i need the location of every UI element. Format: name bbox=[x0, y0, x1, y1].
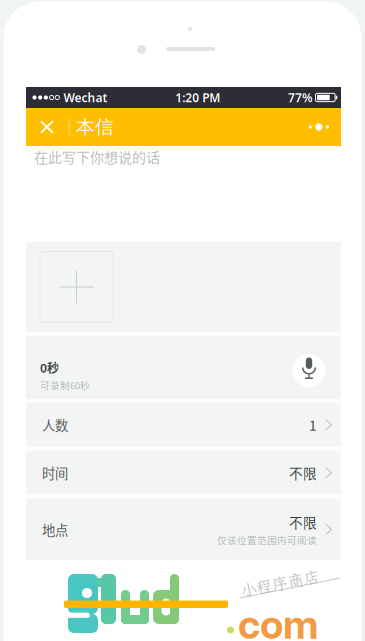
staticText: 不限 bbox=[289, 463, 317, 483]
button[interactable]: Add photo bbox=[40, 251, 113, 322]
staticText: com bbox=[238, 600, 318, 641]
staticText: 可录制60秒 bbox=[40, 378, 90, 392]
staticText: 仅该位置范围内可阅读 bbox=[217, 533, 317, 547]
staticText: 人数 bbox=[42, 415, 68, 434]
staticText: 1 bbox=[309, 415, 317, 435]
staticText: 地点 bbox=[42, 520, 68, 539]
staticText: 不限 bbox=[289, 512, 317, 532]
button[interactable]: 人数 bbox=[26, 403, 341, 446]
button[interactable]: 时间 bbox=[26, 451, 341, 494]
button[interactable]: More options bbox=[297, 108, 341, 146]
staticText: 77% bbox=[288, 89, 313, 105]
staticText: 0秒 bbox=[40, 359, 59, 376]
button[interactable]: 地点 bbox=[26, 499, 341, 560]
staticText: 1:20 PM bbox=[175, 89, 220, 105]
button[interactable]: 0秒 bbox=[26, 336, 341, 399]
staticText: Wechat bbox=[63, 89, 107, 105]
staticText: 小程序商店 bbox=[240, 573, 320, 594]
staticText: 时间 bbox=[42, 463, 68, 482]
staticText: 本信 bbox=[76, 115, 114, 138]
button[interactable]: Close bbox=[26, 108, 69, 146]
staticText: 在此写下你想说的话 bbox=[34, 146, 160, 167]
